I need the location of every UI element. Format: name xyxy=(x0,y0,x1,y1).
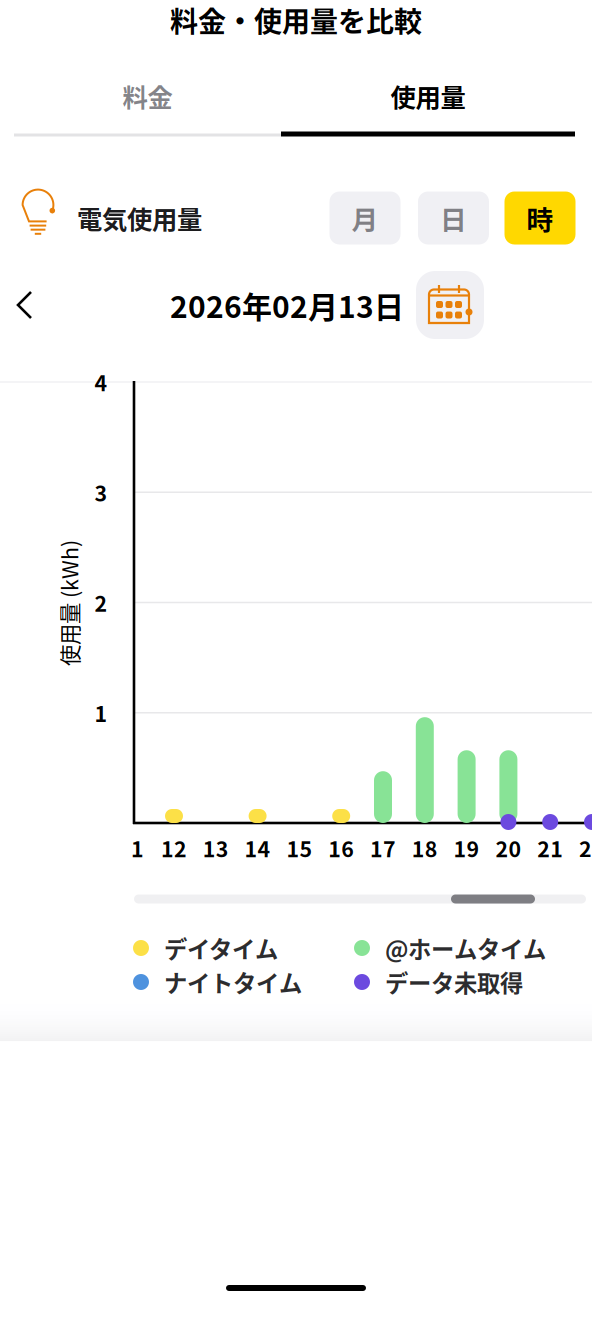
staticText: 15 xyxy=(286,833,312,863)
staticText: 2026年02月13日 xyxy=(170,283,404,327)
staticText: 16 xyxy=(328,833,354,863)
button[interactable]: Choose date xyxy=(416,271,484,339)
staticText: 20 xyxy=(495,833,521,863)
staticText: 月 xyxy=(351,199,378,237)
staticText: 2 xyxy=(94,587,107,618)
staticText: 22 xyxy=(579,833,592,863)
staticText: 4 xyxy=(94,367,107,397)
staticText: 1 xyxy=(94,697,107,728)
staticText: 14 xyxy=(245,833,271,863)
staticText: 3 xyxy=(94,477,107,508)
staticText: 使用量 xyxy=(390,78,465,114)
button[interactable]: 料金 xyxy=(14,58,281,134)
staticText: 13 xyxy=(203,833,229,863)
staticText: 時 xyxy=(526,199,553,237)
staticText: ナイトタイム xyxy=(164,965,302,999)
button[interactable]: 時 xyxy=(504,191,575,244)
staticText: 18 xyxy=(412,833,438,863)
staticText: @ホームタイム xyxy=(385,931,546,965)
staticText: デイタイム xyxy=(164,931,278,965)
button[interactable]: 月 xyxy=(329,191,400,244)
staticText: 電気使用量 xyxy=(77,200,202,236)
staticText: 1 xyxy=(131,833,144,863)
staticText: 21 xyxy=(537,833,563,863)
staticText: 17 xyxy=(370,833,396,863)
staticText: 19 xyxy=(454,833,480,863)
staticText: 日 xyxy=(440,199,467,237)
staticText: データ未取得 xyxy=(385,965,523,999)
staticText: 使用量 (kWh) xyxy=(6,588,132,618)
button[interactable]: 使用量 xyxy=(281,58,575,134)
staticText: 料金・使用量を比較 xyxy=(170,0,422,40)
button[interactable]: 日 xyxy=(418,191,489,244)
button[interactable]: Previous day xyxy=(4,281,48,329)
staticText: 料金 xyxy=(122,78,172,114)
staticText: 12 xyxy=(161,833,187,863)
